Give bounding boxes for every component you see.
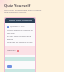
button[interactable]	[7, 65, 12, 68]
staticText: Mercury	[7, 49, 16, 52]
staticText: Test your knowledge with a quick five qu…	[4, 8, 42, 14]
staticText: Question 1 of 5	[10, 25, 25, 28]
staticText: Quiz Yourself	[4, 3, 31, 8]
staticText: Which planet is closest to the sun in ou…	[7, 29, 33, 44]
button[interactable]: Mercury	[5, 46, 35, 55]
staticText: Space Trivia Challenge	[9, 19, 32, 22]
button[interactable]: Space Trivia Challenge	[5, 18, 35, 23]
